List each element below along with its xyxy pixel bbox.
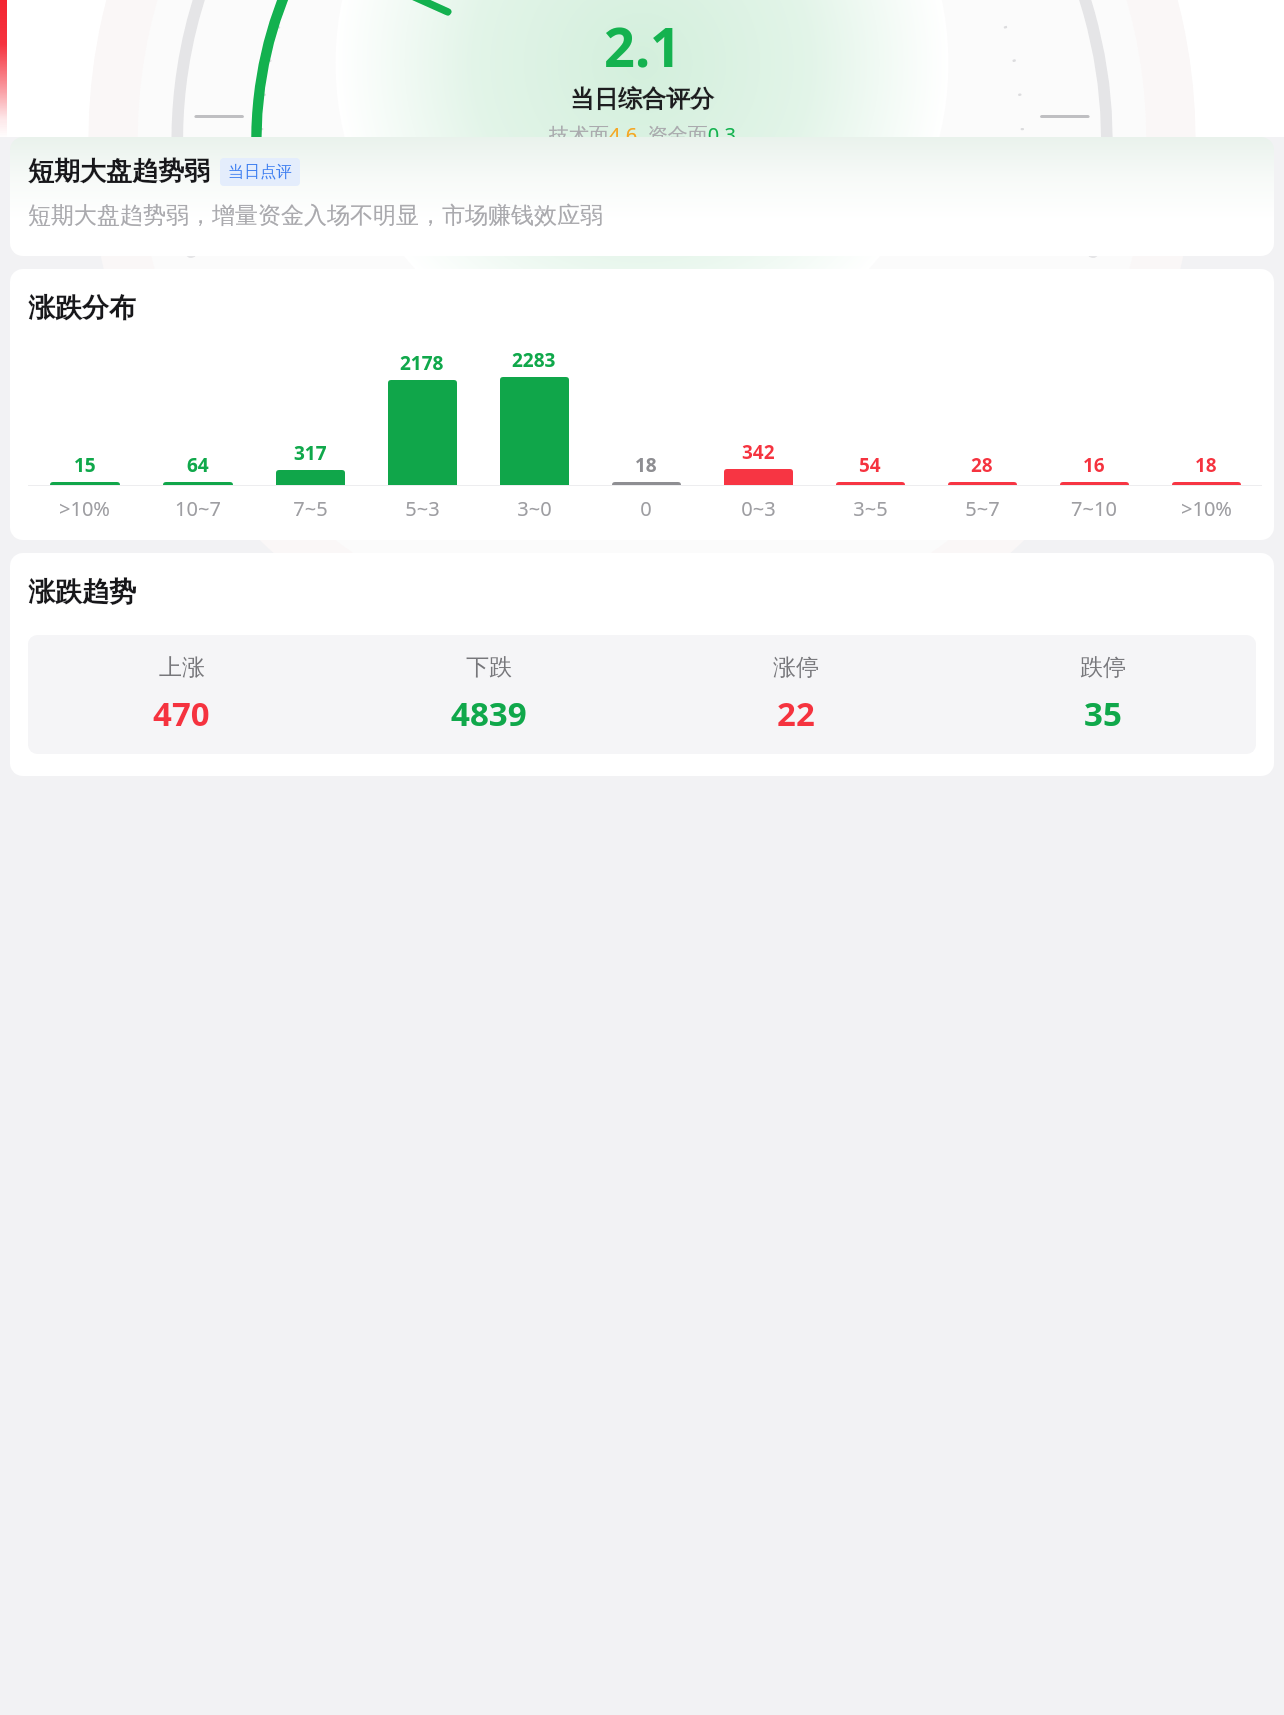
staticText: 470 xyxy=(153,691,210,736)
staticText: 5~7 xyxy=(965,495,1000,522)
staticText: 22 xyxy=(777,691,815,736)
staticText: 当日综合评分 xyxy=(570,84,714,114)
button[interactable]: 短期大盘趋势弱 xyxy=(10,137,1274,256)
staticText: 2178 xyxy=(400,350,444,376)
staticText: 跌停 xyxy=(1080,653,1126,682)
staticText: 64 xyxy=(187,452,209,478)
staticText: >10% xyxy=(1181,495,1232,522)
staticText: 0 xyxy=(640,495,652,522)
staticText: 3~0 xyxy=(517,495,552,522)
staticText: 54 xyxy=(859,452,881,478)
staticText: 35 xyxy=(1084,691,1122,736)
staticText: 2.1 xyxy=(604,9,681,83)
staticText: 下跌 xyxy=(466,653,512,682)
staticText: 28 xyxy=(971,452,993,478)
staticText: 10~7 xyxy=(175,495,221,522)
staticText: 短期大盘趋势弱 xyxy=(28,155,210,188)
staticText: 3~5 xyxy=(853,495,888,522)
staticText: 7~10 xyxy=(1071,495,1117,522)
staticText: 16 xyxy=(1083,452,1105,478)
staticText: 当日点评 xyxy=(228,162,292,182)
staticText: 技术面4.6 资金面0.3 xyxy=(549,121,736,137)
staticText: >10% xyxy=(59,495,110,522)
staticText: 上涨 xyxy=(159,653,205,682)
staticText: 0~3 xyxy=(741,495,776,522)
staticText: 5~3 xyxy=(405,495,440,522)
staticText: 342 xyxy=(742,439,775,465)
staticText: 7~5 xyxy=(293,495,328,522)
staticText: 2283 xyxy=(512,347,556,373)
staticText: 18 xyxy=(635,452,657,478)
staticText: 4839 xyxy=(451,691,527,736)
staticText: 涨跌分布 xyxy=(28,291,136,325)
staticText: 涨停 xyxy=(773,653,819,682)
staticText: 15 xyxy=(74,452,96,478)
staticText: 短期大盘趋势弱，增量资金入场不明显，市场赚钱效应弱 xyxy=(28,201,603,230)
staticText: 317 xyxy=(294,440,327,466)
button[interactable]: 涨跌分布 xyxy=(10,269,1274,540)
staticText: 18 xyxy=(1195,452,1217,478)
staticText: 涨跌趋势 xyxy=(28,575,136,609)
button[interactable]: 涨跌趋势 xyxy=(10,553,1274,776)
